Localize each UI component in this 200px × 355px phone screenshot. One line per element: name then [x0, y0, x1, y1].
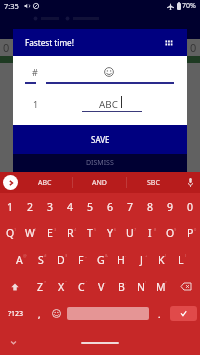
staticText: 4 — [74, 227, 77, 232]
staticText: ' — [86, 280, 87, 285]
button[interactable]: 7 — [120, 220, 140, 246]
button[interactable]: $ — [51, 246, 71, 273]
button[interactable]: SAVE — [13, 125, 187, 154]
staticText: E — [47, 226, 53, 240]
staticText: O — [166, 226, 175, 240]
staticText: K — [158, 253, 165, 267]
button[interactable]: Voice input — [180, 172, 200, 193]
staticText: ? — [165, 280, 167, 285]
button[interactable]: ?123 — [0, 300, 31, 327]
button[interactable]: , — [31, 300, 47, 327]
staticText: N — [137, 280, 145, 294]
staticText: 6 — [114, 227, 117, 232]
staticText: - — [125, 253, 127, 258]
staticText: M — [156, 280, 166, 294]
button[interactable]: ! — [131, 273, 151, 300]
button[interactable]: - — [111, 246, 131, 273]
button[interactable]: Space — [67, 307, 149, 320]
staticText: U — [126, 226, 134, 240]
staticText: 7:35 — [4, 1, 19, 11]
staticText: ?123 — [8, 309, 24, 319]
button[interactable]: AND — [73, 172, 126, 193]
staticText: Fastest time! — [25, 37, 74, 48]
button[interactable]: 8 — [140, 220, 160, 246]
button[interactable]: 3 — [40, 193, 60, 220]
button[interactable]: 6 — [100, 193, 120, 220]
staticText: L — [178, 253, 184, 267]
button[interactable]: * — [30, 273, 51, 300]
staticText: A — [16, 253, 23, 267]
button[interactable]: @ — [9, 246, 30, 273]
button[interactable]: 2 — [20, 193, 40, 220]
button[interactable]: _ — [71, 246, 91, 273]
staticText: 2 — [34, 227, 37, 232]
staticText: I — [148, 226, 152, 240]
staticText: X — [58, 280, 65, 294]
button[interactable]: 9 — [160, 193, 180, 220]
staticText: : — [105, 280, 107, 285]
button[interactable]: Enter — [170, 306, 197, 321]
staticText: 2 — [27, 200, 34, 214]
button[interactable]: 4 — [60, 193, 80, 220]
button[interactable]: ' — [71, 273, 91, 300]
button[interactable]: More suggestions — [3, 175, 18, 190]
button[interactable]: ? — [151, 273, 171, 300]
staticText: 0 — [190, 40, 197, 55]
staticText: H — [117, 253, 125, 267]
staticText: 0 — [194, 227, 197, 232]
staticText: J — [140, 253, 143, 267]
button[interactable]: 0 — [180, 220, 200, 246]
staticText: + — [145, 253, 148, 258]
button[interactable]: # — [30, 246, 51, 273]
button[interactable]: DISMISS — [13, 154, 187, 172]
staticText: F — [78, 253, 84, 267]
button[interactable]: 1 — [0, 193, 20, 220]
staticText: 5 — [87, 200, 94, 214]
button[interactable]: ( — [151, 246, 171, 273]
staticText: AND — [92, 178, 107, 188]
button[interactable]: ) — [171, 246, 191, 273]
staticText: # — [32, 66, 38, 78]
button[interactable]: 6 — [100, 220, 120, 246]
button[interactable]: 5 — [80, 220, 100, 246]
button[interactable]: 7 — [120, 193, 140, 220]
staticText: ABC — [38, 178, 52, 188]
button[interactable]: Shift — [0, 273, 30, 300]
staticText: 8 — [147, 200, 154, 214]
button[interactable]: + — [131, 246, 151, 273]
button[interactable]: ; — [111, 273, 131, 300]
staticText: ) — [185, 253, 187, 258]
button[interactable]: 5 — [80, 193, 100, 220]
button[interactable]: SBC — [127, 172, 180, 193]
staticText: # — [44, 253, 47, 258]
staticText: 7 — [127, 200, 134, 214]
staticText: B — [118, 280, 125, 294]
staticText: Z — [37, 280, 44, 294]
staticText: 7 — [134, 227, 137, 232]
button[interactable]: . — [151, 300, 167, 327]
button[interactable]: 9 — [160, 220, 180, 246]
button[interactable]: 4 — [60, 220, 80, 246]
staticText: D — [57, 253, 65, 267]
button[interactable]: 0 — [180, 193, 200, 220]
button[interactable]: Emoji — [47, 300, 65, 327]
button[interactable]: ABC — [18, 172, 72, 193]
staticText: DISMISS — [86, 158, 114, 168]
button[interactable]: Hide keyboard — [6, 335, 20, 349]
staticText: ; — [125, 280, 127, 285]
button[interactable]: 8 — [140, 193, 160, 220]
staticText: V — [98, 280, 105, 294]
button[interactable]: " — [51, 273, 71, 300]
staticText: 3 — [47, 200, 54, 214]
button[interactable]: 1 — [0, 220, 20, 246]
staticText: W — [25, 226, 35, 240]
button[interactable]: 2 — [20, 220, 40, 246]
button[interactable]: : — [91, 273, 111, 300]
button[interactable]: 3 — [40, 220, 60, 246]
button[interactable]: Backspace — [171, 273, 200, 300]
staticText: SAVE — [91, 134, 110, 145]
button[interactable]: & — [91, 246, 111, 273]
staticText: G — [97, 253, 105, 267]
button[interactable]: Apps menu — [161, 35, 177, 51]
staticText: S — [38, 253, 44, 267]
